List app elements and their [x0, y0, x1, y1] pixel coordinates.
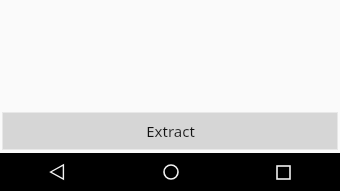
staticText: Extract — [146, 121, 195, 141]
button[interactable]: Recent apps — [227, 153, 340, 191]
button[interactable]: Extract — [2, 112, 338, 150]
button[interactable]: Back — [0, 153, 114, 191]
button[interactable]: Home — [114, 153, 227, 191]
